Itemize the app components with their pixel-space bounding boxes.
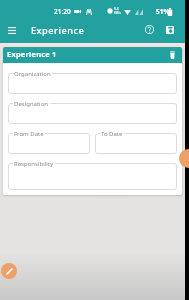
button[interactable]: Add experience bbox=[179, 149, 189, 168]
button[interactable]: Save bbox=[162, 22, 177, 37]
staticText: To Date bbox=[101, 130, 123, 138]
staticText: 51% bbox=[156, 7, 170, 16]
staticText: Organization bbox=[14, 70, 51, 78]
staticText: Responsibility bbox=[14, 160, 54, 168]
button[interactable]: Help bbox=[142, 22, 157, 37]
button[interactable]: Delete experience bbox=[166, 49, 178, 61]
button[interactable] bbox=[8, 133, 90, 154]
button[interactable] bbox=[8, 163, 177, 190]
staticText: 21:20 bbox=[54, 7, 71, 16]
button[interactable]: Open navigation menu bbox=[4, 23, 19, 38]
staticText: Designation bbox=[14, 100, 49, 108]
button[interactable]: Edit bbox=[1, 263, 17, 279]
staticText: Experience bbox=[31, 24, 85, 37]
staticText: Experience 1 bbox=[7, 49, 57, 59]
staticText: From Date bbox=[14, 130, 44, 138]
button[interactable] bbox=[95, 133, 177, 154]
button[interactable] bbox=[8, 73, 177, 94]
button[interactable] bbox=[8, 103, 177, 124]
staticText: 9.4 KB/s bbox=[114, 7, 121, 15]
